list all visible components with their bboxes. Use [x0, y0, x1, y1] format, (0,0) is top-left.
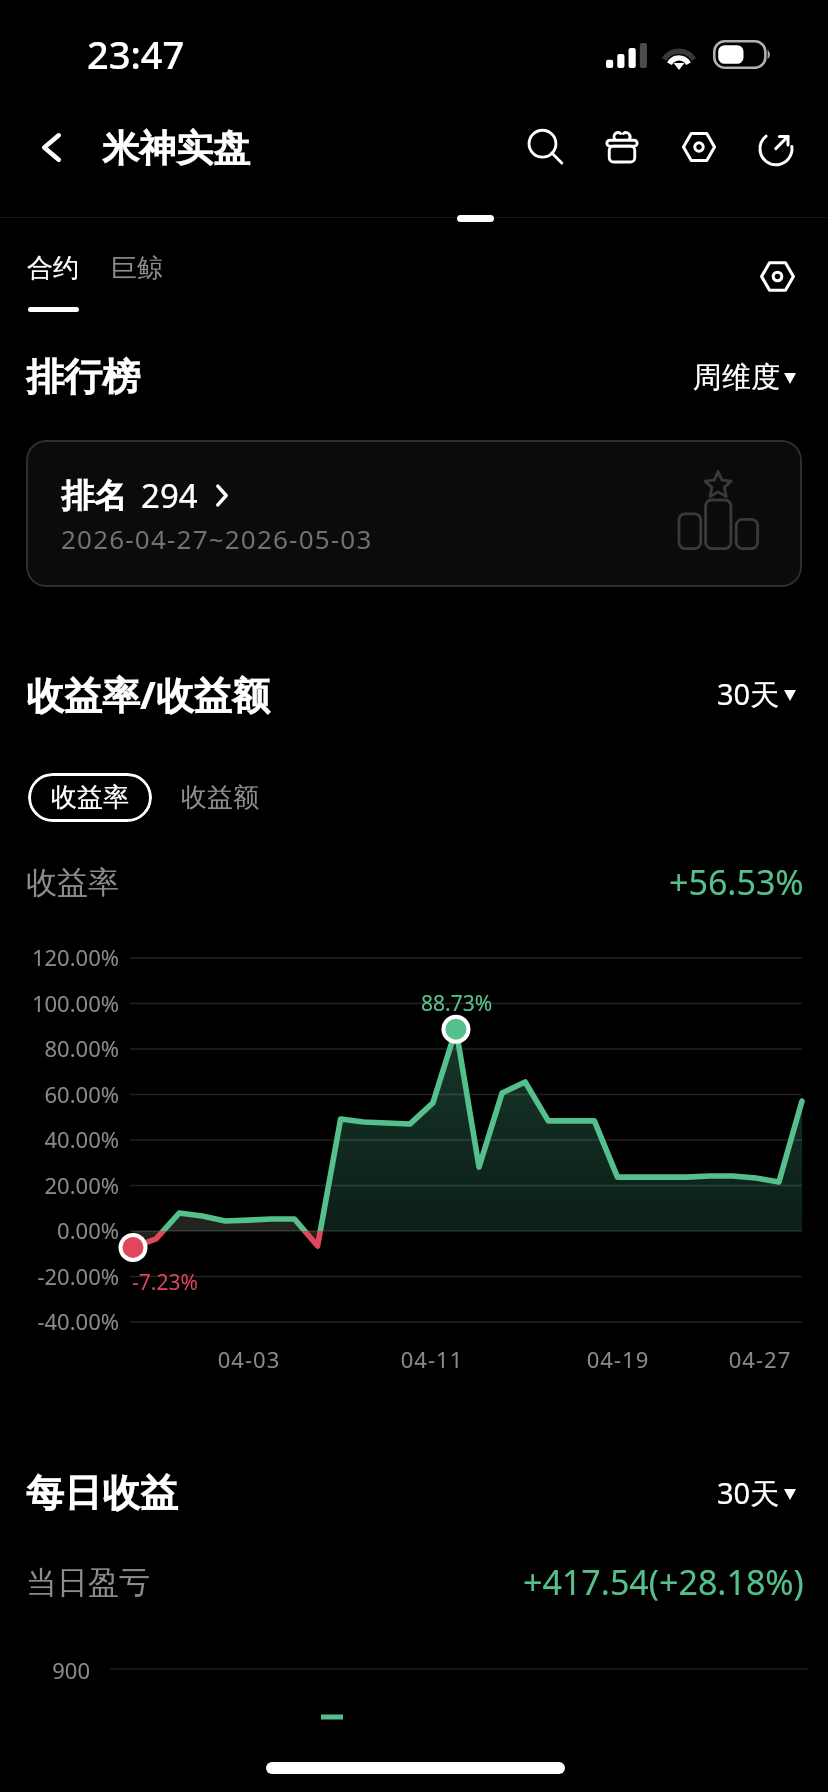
staticText: 40.00% [0, 1124, 119, 1154]
staticText: 每日收益 [26, 1469, 178, 1517]
staticText: 收益率 [51, 781, 129, 814]
button[interactable]: 排名 [26, 440, 802, 587]
staticText: 2026-04-27~2026-05-03 [61, 521, 373, 556]
button[interactable]: 30天 [713, 666, 804, 722]
button[interactable]: Filter [744, 243, 810, 309]
button[interactable]: 收益率 [28, 773, 152, 822]
staticText: -20.00% [0, 1261, 119, 1291]
staticText: 60.00% [0, 1079, 119, 1109]
staticText: -40.00% [0, 1306, 119, 1336]
button[interactable]: 30天 [713, 1465, 804, 1521]
staticText: 100.00% [0, 988, 119, 1018]
staticText: 20.00% [0, 1170, 119, 1200]
staticText: 收益率/收益额 [26, 668, 270, 720]
staticText: 294 [141, 473, 198, 518]
staticText: 80.00% [0, 1033, 119, 1063]
staticText: 04-03 [179, 1344, 319, 1374]
staticText: 0.00% [0, 1215, 119, 1245]
staticText: 当日盈亏 [26, 1563, 150, 1602]
button[interactable]: Settings [660, 108, 737, 186]
staticText: 排名 [61, 475, 127, 517]
button[interactable]: Search [506, 108, 583, 186]
staticText: 120.00% [0, 942, 119, 972]
staticText: -7.23% [132, 1268, 198, 1297]
staticText: +417.54(+28.18%) [523, 1559, 804, 1605]
staticText: 04-27 [690, 1344, 828, 1374]
staticText: 排行榜 [26, 353, 140, 401]
staticText: 收益率 [26, 863, 119, 902]
button[interactable]: 合约 [14, 240, 92, 324]
staticText: 900 [0, 1655, 90, 1685]
staticText: 30天 [717, 674, 780, 714]
staticText: 23:47 [87, 28, 185, 80]
staticText: 合约 [27, 252, 79, 285]
staticText: 30天 [717, 1473, 780, 1513]
staticText: 巨鲸 [111, 252, 163, 285]
button[interactable]: Rewards [583, 108, 660, 186]
staticText: +56.53% [669, 859, 804, 905]
staticText: 周维度 [693, 359, 780, 396]
button[interactable]: Share [737, 108, 814, 186]
button[interactable]: Back [16, 116, 86, 178]
staticText: 88.73% [421, 989, 493, 1018]
staticText: 米神实盘 [102, 125, 250, 172]
staticText: 04-19 [548, 1344, 688, 1374]
button[interactable]: 收益额 [169, 773, 271, 822]
button[interactable]: 周维度 [689, 351, 804, 404]
staticText: 收益额 [181, 781, 259, 814]
staticText: 04-11 [362, 1344, 502, 1374]
button[interactable]: 巨鲸 [98, 240, 176, 297]
